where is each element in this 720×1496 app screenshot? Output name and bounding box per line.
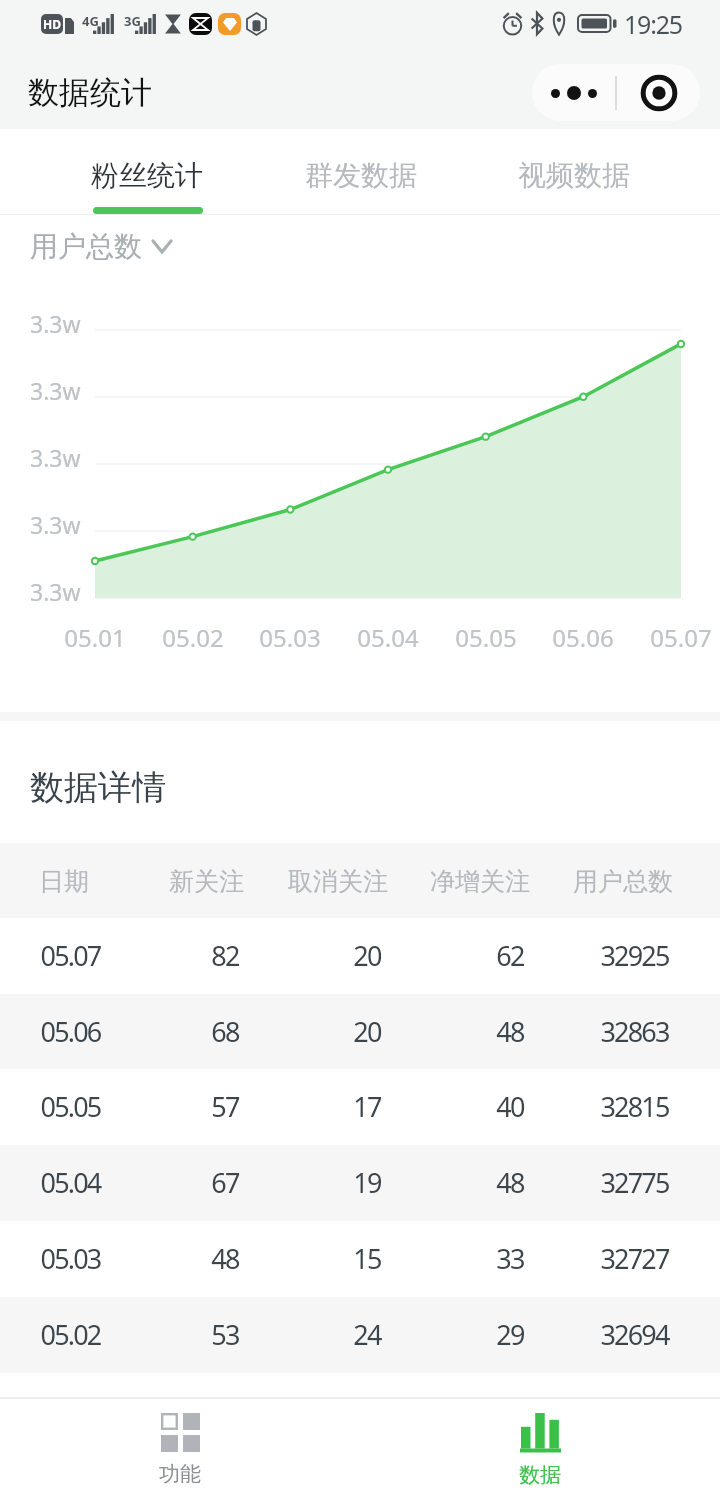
staticText: 17 (353, 1088, 381, 1125)
staticText: 05.04 (357, 621, 419, 654)
staticText: 数据统计 (28, 73, 152, 112)
button[interactable]: 05.05 (0, 1069, 720, 1145)
staticText: 净增关注 (430, 866, 530, 897)
button[interactable]: 05.06 (0, 994, 720, 1070)
staticText: 05.03 (40, 1240, 101, 1277)
staticText: 62 (496, 937, 524, 974)
staticText: 40 (496, 1088, 524, 1125)
staticText: 3.3w (30, 509, 81, 540)
staticText: 32863 (600, 1013, 669, 1050)
staticText: 05.03 (259, 621, 321, 654)
staticText: 05.05 (40, 1088, 101, 1125)
staticText: 新关注 (169, 866, 244, 897)
staticText: 05.07 (40, 937, 101, 974)
staticText: 05.02 (40, 1316, 101, 1353)
staticText: 05.07 (650, 621, 712, 654)
button[interactable]: 功能 (0, 1399, 360, 1496)
staticText: 19:25 (624, 7, 682, 41)
staticText: 数据 (519, 1462, 561, 1488)
staticText: 05.06 (40, 1013, 101, 1050)
staticText: 32815 (600, 1088, 669, 1125)
staticText: 粉丝统计 (91, 158, 203, 193)
staticText: 24 (353, 1316, 381, 1353)
staticText: 3.3w (30, 375, 81, 406)
button[interactable]: More options (532, 64, 615, 121)
staticText: 3.3w (30, 576, 81, 607)
staticText: 19 (353, 1164, 381, 1201)
staticText: 48 (211, 1240, 239, 1277)
staticText: 视频数据 (518, 158, 630, 193)
button[interactable]: 粉丝统计 (40, 129, 254, 215)
staticText: 32775 (600, 1164, 669, 1201)
staticText: 20 (353, 1013, 381, 1050)
staticText: 32925 (600, 937, 669, 974)
staticText: 05.05 (455, 621, 517, 654)
staticText: 日期 (39, 866, 89, 897)
button[interactable]: Close mini program (617, 64, 700, 121)
staticText: 67 (211, 1164, 239, 1201)
staticText: 用户总数 (573, 866, 673, 897)
button[interactable]: 视频数据 (467, 129, 680, 215)
staticText: 05.06 (552, 621, 614, 654)
staticText: 05.02 (162, 621, 224, 654)
staticText: 48 (496, 1013, 524, 1050)
staticText: 20 (353, 937, 381, 974)
button[interactable]: 用户总数 (30, 229, 171, 264)
button[interactable]: 数据 (360, 1399, 720, 1496)
staticText: 32694 (600, 1316, 669, 1353)
staticText: 53 (211, 1316, 239, 1353)
staticText: 33 (496, 1240, 524, 1277)
staticText: 68 (211, 1013, 239, 1050)
button[interactable]: 05.02 (0, 1297, 720, 1373)
staticText: 3.3w (30, 442, 81, 473)
staticText: 4G (82, 12, 99, 30)
staticText: 15 (353, 1240, 381, 1277)
staticText: 05.01 (64, 621, 126, 654)
staticText: 29 (496, 1316, 524, 1353)
button[interactable]: 05.04 (0, 1145, 720, 1221)
staticText: 82 (211, 937, 239, 974)
staticText: 57 (211, 1088, 239, 1125)
staticText: 取消关注 (288, 866, 388, 897)
staticText: 05.04 (40, 1164, 101, 1201)
staticText: 群发数据 (305, 158, 417, 193)
button[interactable]: 群发数据 (254, 129, 467, 215)
staticText: 数据详情 (30, 766, 166, 809)
staticText: 功能 (159, 1461, 201, 1487)
staticText: 3.3w (30, 308, 81, 339)
staticText: 用户总数 (30, 229, 142, 264)
staticText: 32727 (600, 1240, 669, 1277)
button[interactable]: 05.07 (0, 918, 720, 994)
staticText: 3G (124, 12, 141, 30)
staticText: HD (43, 16, 61, 32)
staticText: 48 (496, 1164, 524, 1201)
button[interactable]: 05.03 (0, 1221, 720, 1297)
